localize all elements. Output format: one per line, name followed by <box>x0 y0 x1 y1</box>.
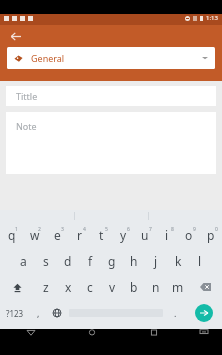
staticText: c <box>87 279 93 295</box>
staticText: y <box>120 227 127 243</box>
button[interactable]: 3 <box>46 222 68 248</box>
button[interactable]: 9 <box>178 222 200 248</box>
button[interactable]: General <box>7 47 215 69</box>
button[interactable]: Space <box>66 300 166 326</box>
staticText: 9 <box>193 226 196 233</box>
button[interactable]: Enter <box>185 300 222 326</box>
staticText: u <box>141 227 149 243</box>
staticText: , <box>37 307 40 319</box>
staticText: 6 <box>127 226 130 233</box>
button[interactable]: Back <box>6 27 24 45</box>
button[interactable]: 0 <box>200 222 222 248</box>
button[interactable]: b <box>123 274 145 300</box>
button[interactable]: 7 <box>134 222 156 248</box>
staticText: j <box>154 253 158 269</box>
button[interactable]: s <box>35 248 57 274</box>
button[interactable]: , <box>29 300 47 326</box>
button[interactable]: . <box>166 300 185 326</box>
button[interactable]: g <box>101 248 123 274</box>
button[interactable]: 4 <box>68 222 90 248</box>
button[interactable]: 2 <box>23 222 46 248</box>
staticText: 8 <box>171 226 174 233</box>
staticText: i <box>165 227 169 243</box>
staticText: d <box>64 253 72 269</box>
button[interactable]: 8 <box>156 222 178 248</box>
staticText: 1 <box>15 226 18 233</box>
staticText: g <box>108 253 116 269</box>
staticText: t <box>99 227 104 243</box>
staticText: o <box>185 227 193 243</box>
button[interactable]: k <box>167 248 189 274</box>
staticText: z <box>43 279 49 295</box>
staticText: w <box>30 227 40 243</box>
staticText: h <box>130 253 138 269</box>
staticText: l <box>198 253 202 269</box>
staticText: . <box>174 307 177 319</box>
staticText: k <box>175 253 182 269</box>
button[interactable]: l <box>189 248 211 274</box>
staticText: f <box>88 253 93 269</box>
button[interactable]: v <box>101 274 123 300</box>
staticText: a <box>20 253 27 269</box>
staticText: 7 <box>149 226 152 233</box>
staticText: 1:13 <box>206 14 218 22</box>
staticText: r <box>77 227 82 243</box>
staticText: b <box>130 279 138 295</box>
staticText: x <box>65 279 72 295</box>
staticText: 5 <box>105 226 108 233</box>
button[interactable]: h <box>123 248 145 274</box>
button[interactable]: c <box>79 274 101 300</box>
button[interactable]: Backspace <box>189 274 222 300</box>
staticText: General <box>31 52 65 64</box>
button[interactable]: j <box>145 248 167 274</box>
button[interactable]: Recents <box>123 329 185 355</box>
staticText: s <box>43 253 49 269</box>
staticText: 2 <box>38 226 41 233</box>
staticText: Note <box>16 120 37 132</box>
button[interactable]: d <box>57 248 79 274</box>
button[interactable]: z <box>34 274 57 300</box>
staticText: Tittle <box>16 90 38 102</box>
staticText: e <box>54 227 61 243</box>
staticText: 4 <box>83 226 86 233</box>
staticText: q <box>8 227 16 243</box>
button[interactable]: Note <box>6 112 216 174</box>
button[interactable]: n <box>145 274 167 300</box>
button[interactable]: 1 <box>0 222 23 248</box>
button[interactable]: Home <box>61 329 123 355</box>
staticText: m <box>172 279 184 295</box>
staticText: 3 <box>61 226 64 233</box>
button[interactable]: 5 <box>90 222 112 248</box>
staticText: n <box>152 279 160 295</box>
button[interactable]: m <box>167 274 189 300</box>
staticText: v <box>109 279 116 295</box>
staticText: ?123 <box>6 308 24 319</box>
button[interactable]: f <box>79 248 101 274</box>
button[interactable]: a <box>12 248 35 274</box>
button[interactable]: Back <box>0 329 61 355</box>
staticText: p <box>207 227 215 243</box>
button[interactable]: Shift <box>0 274 34 300</box>
button[interactable]: 6 <box>112 222 134 248</box>
button[interactable]: Hide keyboard <box>185 329 222 355</box>
button[interactable]: ?123 <box>0 300 29 326</box>
button[interactable]: Change language <box>47 300 66 326</box>
button[interactable]: Tittle <box>6 86 216 106</box>
button[interactable]: x <box>57 274 79 300</box>
staticText: 0 <box>215 226 218 233</box>
